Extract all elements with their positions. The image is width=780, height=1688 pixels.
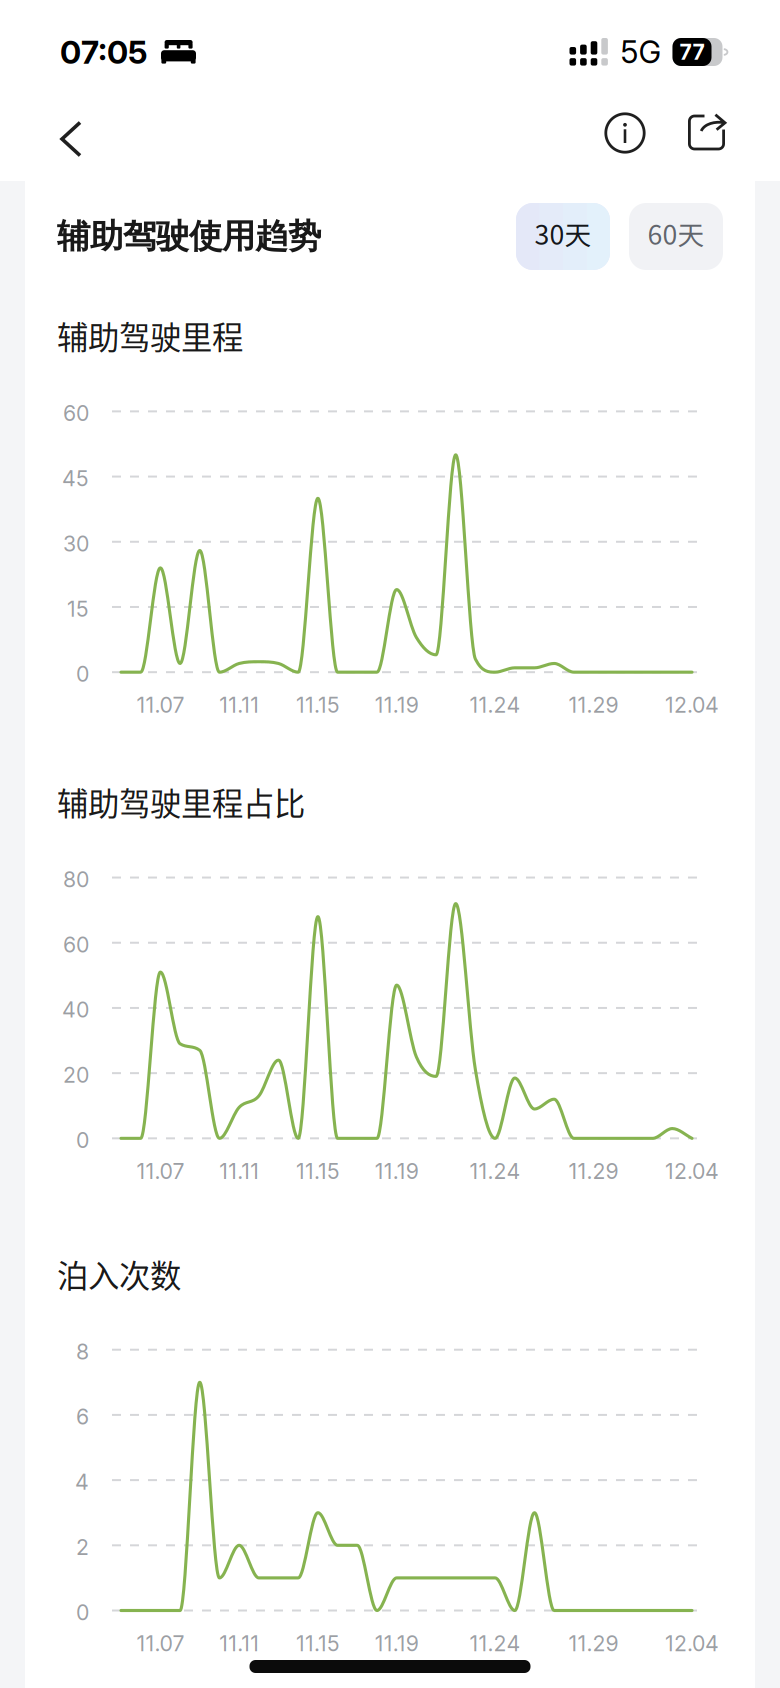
staticText: 11.29 bbox=[569, 692, 619, 718]
button[interactable]: 60天 bbox=[629, 203, 723, 270]
staticText: 11.29 bbox=[569, 1158, 619, 1184]
staticText: 11.19 bbox=[375, 1158, 419, 1184]
button[interactable]: 30天 bbox=[516, 203, 610, 270]
staticText: 11.07 bbox=[136, 1158, 184, 1184]
staticText: 60 bbox=[63, 400, 89, 426]
staticText: 0 bbox=[76, 1127, 89, 1153]
staticText: 8 bbox=[76, 1339, 89, 1364]
staticText: 11.11 bbox=[219, 1158, 259, 1184]
staticText: 30 bbox=[63, 531, 89, 557]
staticText: 11.19 bbox=[375, 1630, 419, 1656]
staticText: 11.15 bbox=[296, 1158, 340, 1184]
staticText: 12.04 bbox=[665, 692, 719, 718]
staticText: 5G bbox=[620, 33, 661, 70]
staticText: 4 bbox=[75, 1469, 89, 1495]
staticText: 12.04 bbox=[665, 1630, 719, 1656]
staticText: 11.24 bbox=[470, 692, 521, 718]
staticText: 40 bbox=[62, 997, 89, 1023]
staticText: 0 bbox=[76, 1599, 89, 1625]
staticText: 泊入次数 bbox=[57, 1251, 181, 1297]
staticText: 11.19 bbox=[375, 692, 419, 718]
button[interactable]: 分享 bbox=[674, 95, 748, 181]
staticText: 80 bbox=[63, 866, 89, 892]
button[interactable]: 返回 bbox=[40, 95, 102, 181]
staticText: 2 bbox=[76, 1534, 89, 1560]
staticText: 60天 bbox=[647, 214, 704, 252]
staticText: 11.24 bbox=[470, 1158, 521, 1184]
button[interactable]: 说明 bbox=[608, 95, 674, 181]
staticText: 辅助驾驶里程占比 bbox=[57, 779, 305, 825]
staticText: 45 bbox=[62, 466, 89, 491]
staticText: 11.07 bbox=[136, 1630, 184, 1656]
staticText: 60 bbox=[63, 932, 89, 957]
staticText: 11.15 bbox=[296, 1630, 340, 1656]
staticText: 77 bbox=[679, 39, 704, 65]
staticText: 11.15 bbox=[296, 692, 340, 718]
staticText: 11.11 bbox=[219, 1630, 259, 1656]
staticText: 辅助驾驶使用趋势 bbox=[57, 215, 321, 257]
staticText: 11.11 bbox=[219, 692, 259, 718]
staticText: 辅助驾驶里程 bbox=[57, 313, 243, 358]
staticText: 15 bbox=[67, 596, 89, 622]
staticText: 07:05 bbox=[60, 33, 148, 71]
staticText: 11.07 bbox=[136, 692, 184, 718]
staticText: 0 bbox=[76, 661, 89, 687]
staticText: 11.24 bbox=[470, 1630, 521, 1656]
staticText: 30天 bbox=[534, 214, 591, 252]
staticText: 20 bbox=[63, 1062, 89, 1088]
staticText: 11.29 bbox=[569, 1630, 619, 1656]
staticText: 12.04 bbox=[665, 1158, 719, 1184]
staticText: 6 bbox=[76, 1404, 89, 1430]
